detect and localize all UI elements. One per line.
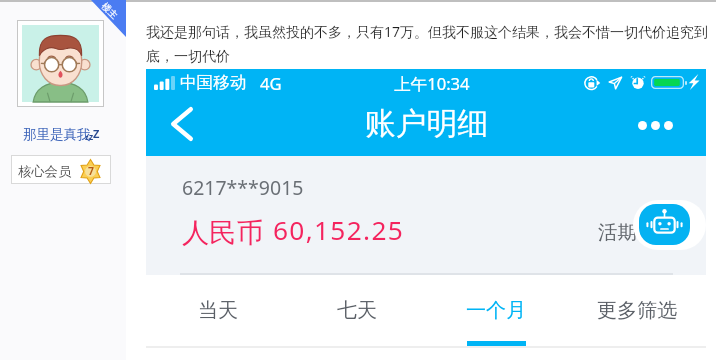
button[interactable]: Back: [158, 97, 208, 153]
button[interactable]: 七天: [321, 291, 394, 347]
button[interactable]: Assistant: [639, 204, 690, 245]
staticText: 4G: [260, 72, 282, 95]
button[interactable]: 一个月: [450, 291, 543, 347]
staticText: 我还是那句话，我虽然投的不多，只有17万。但我不服这个结果，我会不惜一切代价追究…: [146, 22, 710, 65]
button[interactable]: More options: [626, 109, 684, 141]
staticText: Z: [93, 126, 100, 141]
staticText: 人民币: [182, 216, 264, 250]
button[interactable]: 当天: [182, 291, 255, 347]
staticText: 中国移动: [180, 72, 247, 93]
staticText: z: [85, 133, 89, 143]
staticText: z: [89, 131, 94, 143]
staticText: 6217***9015: [182, 174, 304, 201]
staticText: 账户明细: [365, 104, 489, 143]
staticText: 七天: [337, 298, 378, 323]
staticText: 上午10:34: [394, 72, 470, 95]
staticText: 一个月: [466, 298, 527, 323]
staticText: 更多筛选: [597, 298, 678, 323]
staticText: 60,152.25: [273, 212, 405, 248]
staticText: 那里是真我: [23, 126, 91, 143]
button[interactable]: 更多筛选: [581, 291, 694, 347]
staticText: 楼主: [100, 0, 120, 21]
staticText: 7: [88, 164, 95, 178]
staticText: 核心会员: [18, 163, 72, 180]
staticText: 活期余额: [598, 220, 676, 244]
staticText: 当天: [198, 298, 239, 323]
